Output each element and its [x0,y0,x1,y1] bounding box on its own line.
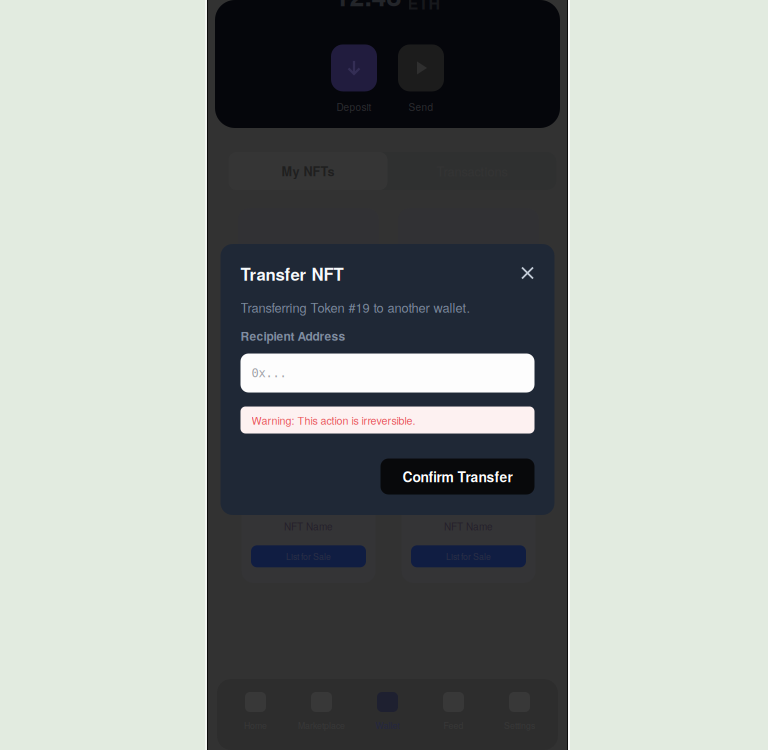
staticText: NFT Name [444,519,493,533]
staticText: Transferring Token #19 to another wallet… [240,298,470,316]
staticText: Confirm Transfer [402,467,512,486]
button[interactable]: Marketplace [288,679,354,750]
button[interactable]: Wallet [354,679,420,750]
staticText: Deposit [336,99,371,114]
staticText: Wallet [375,719,399,731]
button[interactable]: Feed [420,679,486,750]
staticText: 12.48 [334,0,401,14]
staticText: Send [408,99,433,114]
staticText: Feed [443,719,463,731]
button[interactable]: Confirm Transfer [380,458,534,494]
staticText: My NFTs [281,162,334,180]
staticText: Home [244,719,267,731]
staticText: List for Sale [286,550,331,562]
staticText: ETH [407,0,440,14]
staticText: Settings [504,719,535,731]
button[interactable]: Home [222,679,288,750]
staticText: NFT Name [284,519,333,533]
button[interactable]: Close dialog [515,261,539,285]
staticText: 0x... [251,366,286,380]
staticText: Transfer NFT [240,262,343,286]
button[interactable]: 0x... [240,353,534,392]
button[interactable]: Settings [486,679,552,750]
staticText: List for Sale [446,550,491,562]
staticText: Marketplace [298,719,345,731]
staticText: Recipient Address [240,327,345,344]
staticText: Warning: This action is irreversible. [251,412,415,428]
